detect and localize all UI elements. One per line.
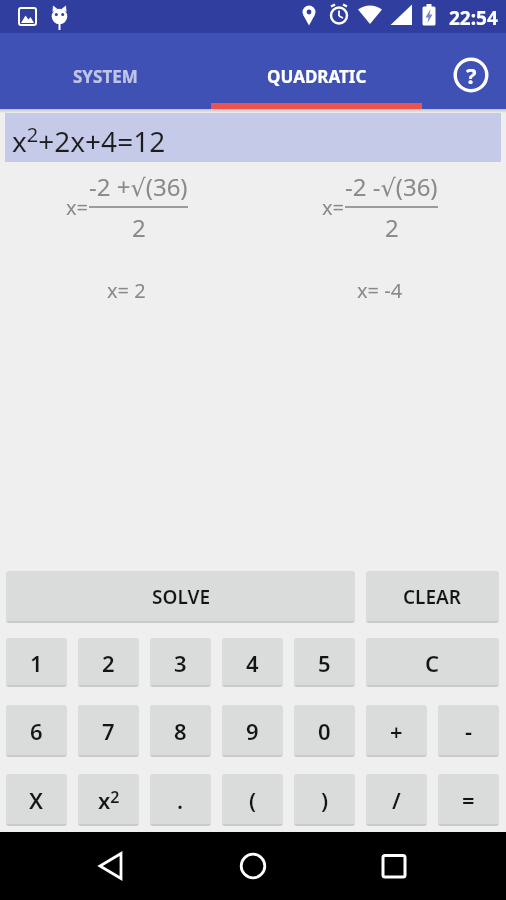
- staticText: -2 +√(36): [89, 170, 188, 203]
- button[interactable]: 0: [294, 705, 355, 757]
- staticText: SYSTEM: [73, 65, 138, 88]
- button[interactable]: x2: [78, 774, 139, 826]
- staticText: 22:54: [449, 5, 498, 31]
- button[interactable]: ?: [451, 55, 491, 95]
- staticText: /: [392, 785, 401, 815]
- staticText: x=: [66, 194, 89, 221]
- button[interactable]: 6: [6, 705, 67, 757]
- staticText: .: [177, 785, 184, 815]
- staticText: x2: [98, 785, 120, 815]
- staticText: 6: [30, 716, 43, 746]
- button[interactable]: SOLVE: [6, 571, 355, 623]
- button[interactable]: =: [438, 774, 499, 826]
- button[interactable]: CLEAR: [366, 571, 499, 623]
- button[interactable]: 7: [78, 705, 139, 757]
- button[interactable]: [229, 842, 277, 890]
- button[interactable]: [370, 842, 418, 890]
- button[interactable]: [88, 842, 136, 890]
- button[interactable]: 9: [222, 705, 283, 757]
- button[interactable]: QUADRATIC: [211, 33, 422, 109]
- button[interactable]: 4: [222, 638, 283, 687]
- button[interactable]: /: [366, 774, 427, 826]
- staticText: ?: [466, 60, 477, 90]
- button[interactable]: (: [222, 774, 283, 826]
- button[interactable]: .: [150, 774, 211, 826]
- staticText: 3: [174, 648, 187, 678]
- staticText: 2: [385, 211, 399, 244]
- button[interactable]: X: [6, 774, 67, 826]
- staticText: -: [465, 716, 473, 746]
- button[interactable]: 1: [6, 638, 67, 687]
- button[interactable]: SYSTEM: [0, 33, 211, 109]
- staticText: 5: [318, 648, 331, 678]
- staticText: X: [29, 785, 44, 815]
- staticText: (: [249, 785, 257, 815]
- staticText: +: [390, 716, 403, 746]
- button[interactable]: +: [366, 705, 427, 757]
- staticText: C: [425, 648, 440, 678]
- staticText: x= -4: [357, 277, 403, 304]
- staticText: 8: [174, 716, 187, 746]
- button[interactable]: 3: [150, 638, 211, 687]
- staticText: 9: [246, 716, 259, 746]
- button[interactable]: 2: [78, 638, 139, 687]
- staticText: x= 2: [107, 277, 146, 304]
- staticText: =: [462, 785, 475, 815]
- button[interactable]: -: [438, 705, 499, 757]
- button[interactable]: 5: [294, 638, 355, 687]
- staticText: 7: [102, 716, 115, 746]
- staticText: x=: [322, 194, 345, 221]
- staticText: CLEAR: [403, 584, 462, 610]
- button[interactable]: C: [366, 638, 499, 687]
- staticText: x2+2x+4=12: [12, 121, 166, 160]
- staticText: ): [321, 785, 329, 815]
- staticText: QUADRATIC: [267, 65, 367, 88]
- staticText: 1: [30, 648, 43, 678]
- staticText: 4: [246, 648, 259, 678]
- button[interactable]: 8: [150, 705, 211, 757]
- staticText: 2: [102, 648, 115, 678]
- staticText: SOLVE: [152, 584, 210, 610]
- staticText: 2: [132, 211, 146, 244]
- button[interactable]: ): [294, 774, 355, 826]
- staticText: -2 -√(36): [345, 170, 438, 203]
- staticText: 0: [318, 716, 331, 746]
